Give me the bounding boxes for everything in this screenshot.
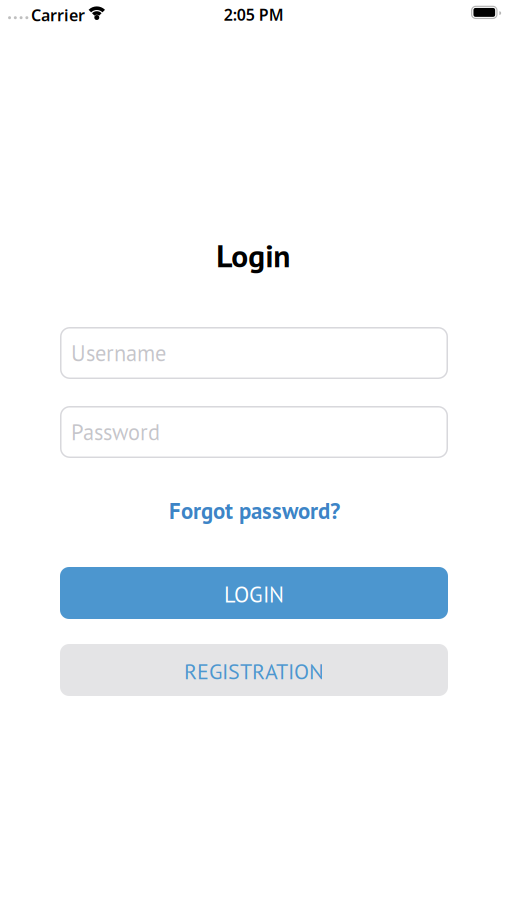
staticText: Forgot password? — [169, 496, 340, 525]
button[interactable]: Forgot password? — [169, 496, 340, 525]
staticText: Carrier — [31, 4, 85, 26]
button[interactable]: Password — [60, 406, 448, 458]
button[interactable]: Username — [60, 327, 448, 379]
staticText: 2:05 PM — [224, 4, 284, 25]
button[interactable]: LOGIN — [60, 567, 448, 619]
staticText: Password — [71, 417, 160, 446]
staticText: Login — [216, 235, 290, 276]
staticText: LOGIN — [224, 580, 284, 609]
staticText: Username — [71, 338, 166, 367]
staticText: REGISTRATION — [184, 657, 324, 685]
button[interactable]: REGISTRATION — [60, 644, 448, 696]
